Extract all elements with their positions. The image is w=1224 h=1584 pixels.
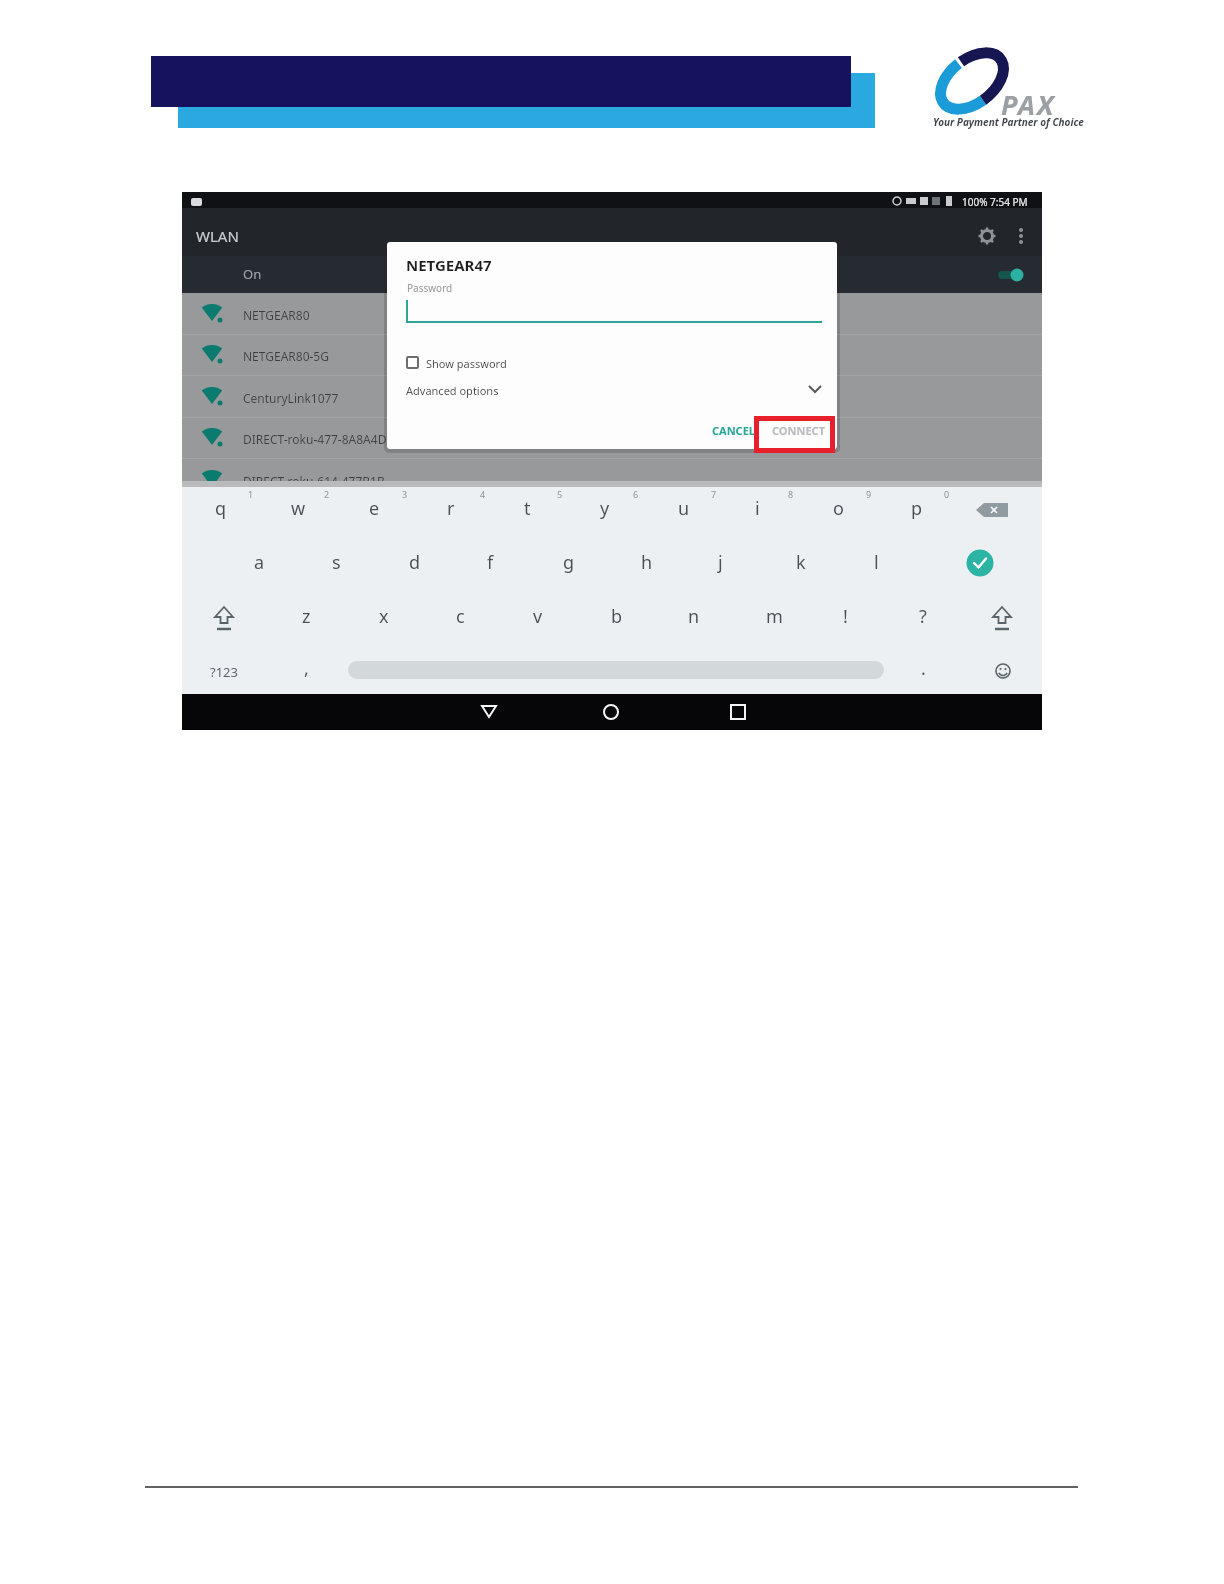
staticText: NETGEAR47	[406, 255, 492, 275]
button[interactable]	[966, 549, 994, 577]
staticText: u	[678, 496, 690, 521]
staticText: v	[533, 604, 543, 629]
staticText: DIRECT-roku-614-477B1B	[243, 473, 385, 489]
staticText: p	[911, 496, 923, 521]
staticText: c	[456, 604, 465, 629]
button[interactable]: n	[674, 604, 714, 634]
staticText: i	[755, 496, 760, 521]
staticText: k	[796, 550, 806, 575]
staticText: Password	[407, 281, 453, 295]
button[interactable]	[182, 417, 1042, 458]
button[interactable]: j	[704, 550, 744, 580]
button[interactable]: h	[627, 550, 667, 580]
staticText: 7	[711, 488, 717, 500]
staticText: n	[688, 604, 700, 629]
staticText: Show password	[426, 356, 507, 371]
button[interactable]: CONNECT	[764, 415, 834, 441]
staticText: f	[487, 550, 494, 575]
staticText: 6	[633, 488, 639, 500]
button[interactable]: z	[288, 604, 328, 634]
button[interactable]: ?	[905, 604, 945, 634]
button[interactable]: o	[819, 496, 859, 526]
staticText: y	[600, 496, 610, 521]
staticText: r	[447, 496, 455, 521]
button[interactable]: i	[741, 496, 781, 526]
staticText: 5	[557, 488, 563, 500]
button[interactable]: CANCEL	[702, 415, 764, 441]
button[interactable]	[976, 500, 1010, 520]
staticText: w	[291, 496, 306, 521]
staticText: l	[874, 550, 879, 575]
button[interactable]: k	[782, 550, 822, 580]
button[interactable]: w	[277, 496, 317, 526]
staticText: DIRECT-roku-477-8A8A4D	[243, 431, 387, 447]
staticText: o	[833, 496, 844, 521]
staticText: ?	[919, 604, 927, 629]
staticText: j	[718, 550, 723, 575]
button[interactable]: r	[433, 496, 473, 526]
staticText: Advanced options	[406, 383, 499, 398]
button[interactable]: a	[240, 550, 280, 580]
staticText: b	[611, 604, 623, 629]
button[interactable]: v	[519, 604, 559, 634]
button[interactable]: b	[597, 604, 637, 634]
staticText: 3	[402, 488, 408, 500]
staticText: 4	[480, 488, 486, 500]
staticText: m	[766, 604, 783, 629]
button[interactable]: y	[586, 496, 626, 526]
button[interactable]: f	[473, 550, 513, 580]
staticText: NETGEAR80-5G	[243, 348, 329, 364]
staticText: CONNECT	[772, 423, 825, 438]
button[interactable]: !	[829, 604, 869, 634]
button[interactable]: e	[355, 496, 395, 526]
button[interactable]: m	[752, 604, 792, 634]
button[interactable]: u	[664, 496, 704, 526]
staticText: 100% 7:54 PM	[962, 195, 1028, 209]
staticText: CANCEL	[712, 423, 755, 438]
staticText: h	[641, 550, 653, 575]
button[interactable]	[182, 459, 1042, 500]
staticText: NETGEAR80	[243, 307, 310, 323]
button[interactable]: p	[897, 496, 937, 526]
staticText: a	[254, 550, 265, 575]
staticText: Your Payment Partner of Choice	[933, 115, 1084, 129]
staticText: .	[921, 656, 926, 681]
button[interactable]: g	[549, 550, 589, 580]
button[interactable]	[991, 606, 1013, 632]
button[interactable]	[182, 376, 1042, 417]
button[interactable]: t	[510, 496, 550, 526]
button[interactable]	[182, 293, 1042, 334]
staticText: WLAN	[196, 226, 239, 246]
button[interactable]: ?123	[210, 655, 256, 685]
staticText: 2	[324, 488, 330, 500]
button[interactable]: l	[860, 550, 900, 580]
staticText: s	[332, 550, 341, 575]
staticText: q	[215, 496, 227, 521]
button[interactable]	[182, 256, 1042, 293]
staticText: On	[243, 265, 262, 283]
button[interactable]: x	[365, 604, 405, 634]
button[interactable]	[406, 378, 1224, 398]
button[interactable]	[213, 606, 235, 632]
button[interactable]	[182, 334, 1042, 375]
button[interactable]: c	[442, 604, 482, 634]
staticText: CenturyLink1077	[243, 390, 339, 406]
staticText: ?123	[210, 663, 238, 681]
staticText: ,	[304, 656, 309, 681]
staticText: PAX	[1001, 86, 1056, 123]
staticText: x	[379, 604, 389, 629]
button[interactable]	[995, 663, 1011, 679]
button[interactable]: s	[318, 550, 358, 580]
button[interactable]: d	[395, 550, 435, 580]
button[interactable]	[406, 356, 419, 369]
staticText: 0	[944, 488, 950, 500]
staticText: g	[563, 550, 575, 575]
button[interactable]: q	[201, 496, 241, 526]
staticText: t	[524, 496, 531, 521]
staticText: e	[369, 496, 380, 521]
staticText: 9	[866, 488, 872, 500]
staticText: d	[409, 550, 421, 575]
staticText: z	[302, 604, 311, 629]
staticText: !	[843, 604, 848, 629]
